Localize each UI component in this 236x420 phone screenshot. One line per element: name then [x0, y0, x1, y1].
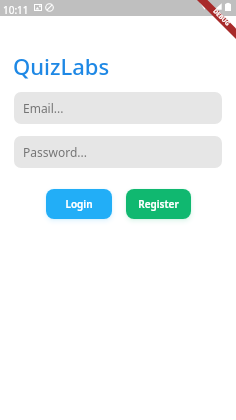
- staticText: 10:11: [3, 3, 29, 17]
- staticText: QuizLabs: [13, 51, 110, 81]
- staticText: Register: [138, 197, 179, 211]
- button[interactable]: Password...: [14, 136, 222, 168]
- button[interactable]: Login: [46, 189, 112, 219]
- staticText: Password...: [23, 144, 87, 160]
- button[interactable]: Email...: [14, 92, 222, 124]
- button[interactable]: Register: [126, 189, 191, 219]
- staticText: DEBUG: [211, 7, 232, 28]
- staticText: Email...: [23, 100, 64, 116]
- staticText: Login: [65, 197, 93, 211]
